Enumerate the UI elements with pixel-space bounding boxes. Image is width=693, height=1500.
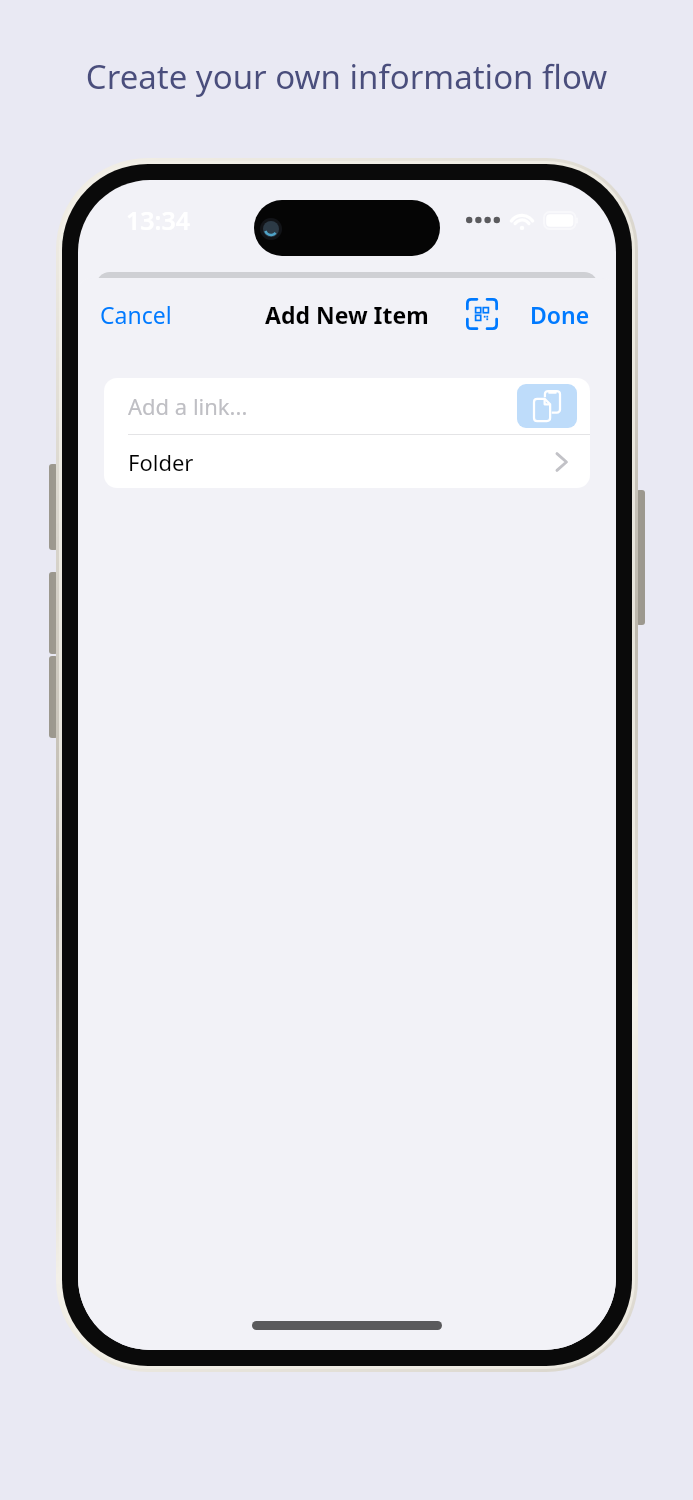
button[interactable]: Folder	[104, 435, 590, 488]
staticText: Add New Item	[265, 299, 429, 330]
button[interactable]: Paste from clipboard	[517, 384, 577, 428]
staticText: Folder	[128, 447, 194, 477]
button[interactable]: Cancel	[88, 291, 184, 338]
staticText: Create your own information flow	[0, 54, 693, 99]
staticText: Add a link...	[128, 391, 248, 421]
button[interactable]: Add a link...	[104, 378, 590, 434]
staticText: Done	[530, 299, 590, 330]
staticText: Cancel	[100, 299, 172, 330]
button[interactable]: Scan QR code	[458, 290, 506, 338]
button[interactable]: Done	[518, 291, 602, 338]
staticText: 13:34	[126, 203, 191, 237]
